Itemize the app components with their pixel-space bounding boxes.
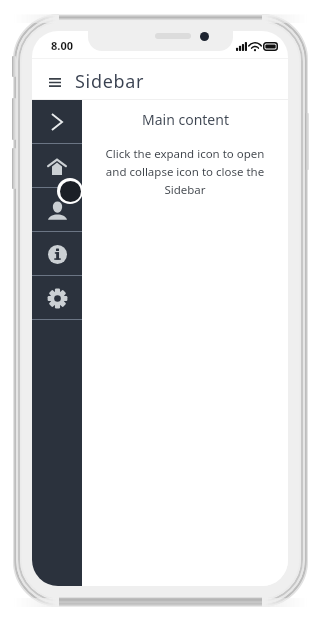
staticText: Click the expand icon to open and collap… (102, 146, 268, 197)
button[interactable]: Open navigation menu (41, 68, 69, 96)
button[interactable]: Expand sidebar (32, 100, 82, 144)
button[interactable]: Profile (32, 188, 82, 232)
staticText: Sidebar (75, 69, 145, 94)
button[interactable]: Settings (32, 276, 82, 320)
button[interactable]: Info (32, 232, 82, 276)
staticText: Main content (142, 110, 229, 129)
button[interactable]: Home (32, 144, 82, 188)
staticText: 8.00 (51, 38, 73, 53)
